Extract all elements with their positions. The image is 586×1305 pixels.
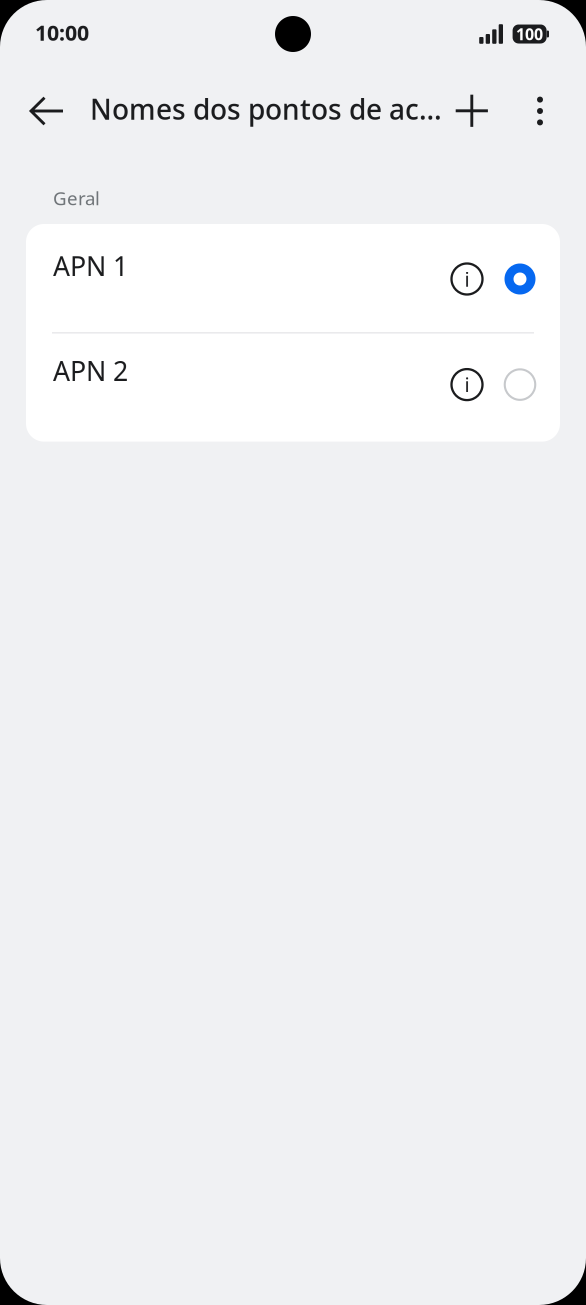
button[interactable]: APN 1 selecionado [496, 239, 544, 319]
staticText: Nomes dos pontos de ac… [90, 90, 442, 128]
button[interactable]: Detalhes de APN 1 [438, 239, 496, 319]
staticText: i [464, 266, 469, 292]
staticText: 10:00 [35, 18, 89, 47]
staticText: APN 1 [53, 248, 128, 284]
button[interactable]: Selecionar APN 2 [496, 345, 544, 425]
button[interactable]: APN 2 [26, 334, 560, 442]
button[interactable]: Adicionar [431, 80, 513, 142]
button[interactable]: Voltar [16, 80, 78, 142]
button[interactable]: APN 1 [26, 224, 560, 332]
staticText: 100 [516, 23, 543, 45]
button[interactable]: Mais opções [513, 80, 567, 142]
button[interactable]: Detalhes de APN 2 [438, 345, 496, 425]
staticText: Geral [53, 186, 100, 210]
staticText: i [464, 371, 469, 398]
staticText: APN 2 [53, 353, 128, 388]
